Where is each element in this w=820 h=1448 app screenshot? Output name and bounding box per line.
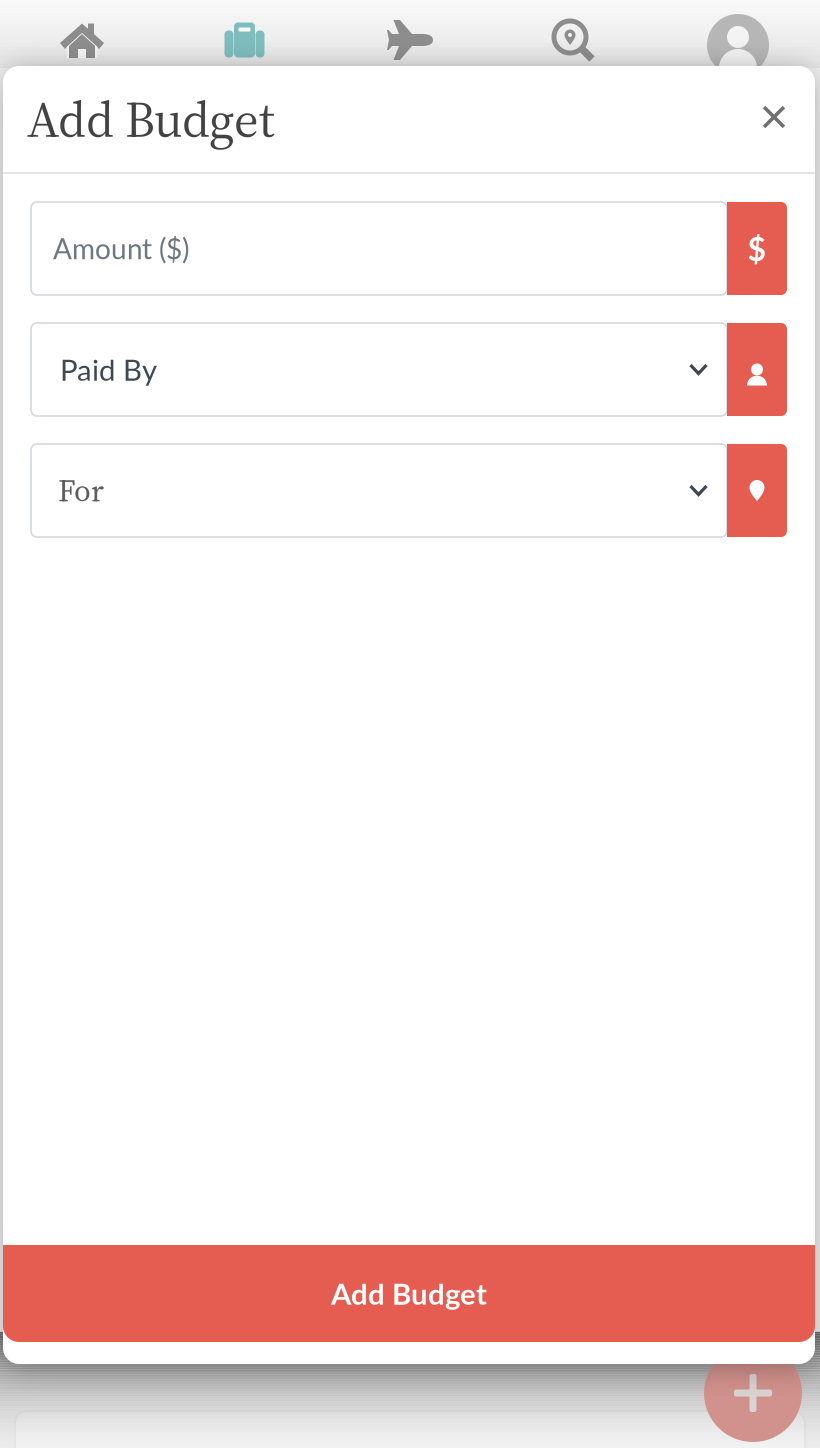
button[interactable]: Explore — [492, 0, 656, 68]
button[interactable]: Amount ($) — [727, 202, 787, 295]
button[interactable]: Paid By — [31, 323, 727, 416]
button[interactable]: Trips — [164, 0, 328, 68]
staticText: For — [58, 469, 104, 511]
button[interactable]: For — [727, 444, 787, 537]
button[interactable]: Flights — [328, 0, 492, 68]
button[interactable]: Close — [748, 93, 800, 145]
button[interactable]: Paid By — [727, 323, 787, 416]
button[interactable]: For — [31, 444, 727, 537]
button[interactable]: Profile — [656, 0, 820, 68]
staticText: Add Budget — [331, 1276, 487, 1311]
button[interactable]: Amount ($) — [31, 202, 727, 295]
staticText: Add Budget — [27, 84, 275, 154]
staticText: Amount ($) — [53, 232, 189, 265]
staticText: Paid By — [60, 352, 157, 387]
button[interactable]: Home — [0, 0, 164, 68]
button[interactable]: Add Budget — [3, 1245, 815, 1342]
staticText: $ — [747, 229, 766, 268]
